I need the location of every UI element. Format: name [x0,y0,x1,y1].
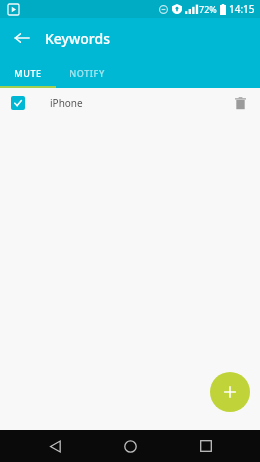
staticText: 72% [199,3,217,15]
staticText: iPhone [50,96,226,110]
staticText: 14:15 [229,2,255,16]
button[interactable]: Toggle mute for iPhone [11,96,25,110]
button[interactable]: Add keyword [210,372,250,412]
button[interactable]: Toggle mute for iPhone [0,88,260,118]
button[interactable]: Delete iPhone [226,89,254,117]
button[interactable]: Recent apps [185,430,227,462]
button[interactable]: MUTE [0,58,56,88]
button[interactable]: Home [109,430,151,462]
staticText: MUTE [14,67,42,79]
staticText: NOTIFY [69,67,105,79]
button[interactable]: Back [34,430,76,462]
button[interactable]: NOTIFY [56,58,118,88]
staticText: Keywords [45,29,110,48]
button[interactable]: Back [6,22,38,54]
